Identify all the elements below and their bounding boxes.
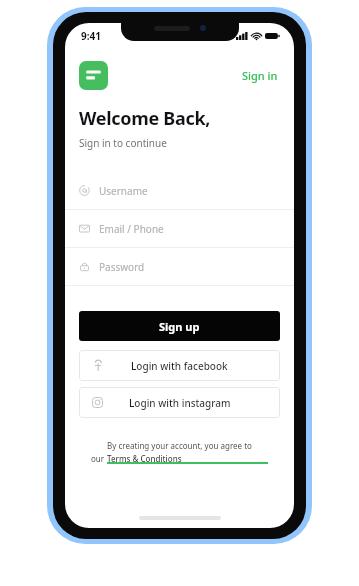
staticText: Username (99, 184, 148, 198)
staticText: Login with facebook (131, 359, 228, 373)
staticText: Terms & Conditions (107, 453, 182, 464)
button[interactable]: Sign in (240, 66, 280, 85)
staticText: By creating your account, you agree to (107, 440, 252, 451)
button[interactable]: Sign up (79, 311, 280, 341)
staticText: our (91, 453, 107, 464)
button[interactable]: Terms & Conditions (107, 453, 268, 464)
button[interactable]: Username (65, 172, 294, 210)
button[interactable]: Email / Phone (65, 210, 294, 248)
staticText: Email / Phone (99, 222, 164, 236)
staticText: Password (99, 260, 145, 274)
staticText: Login with instagram (129, 396, 231, 410)
staticText: Sign up (159, 319, 200, 334)
staticText: 9:41 (81, 29, 101, 43)
button[interactable]: Login with instagram (79, 387, 280, 418)
button[interactable]: Login with facebook (79, 350, 280, 381)
staticText: Welcome Back, (79, 106, 211, 131)
staticText: Sign in to continue (79, 136, 167, 150)
staticText: Sign in (242, 68, 278, 83)
button[interactable]: Password (65, 248, 294, 286)
button[interactable]: App logo (79, 61, 108, 90)
